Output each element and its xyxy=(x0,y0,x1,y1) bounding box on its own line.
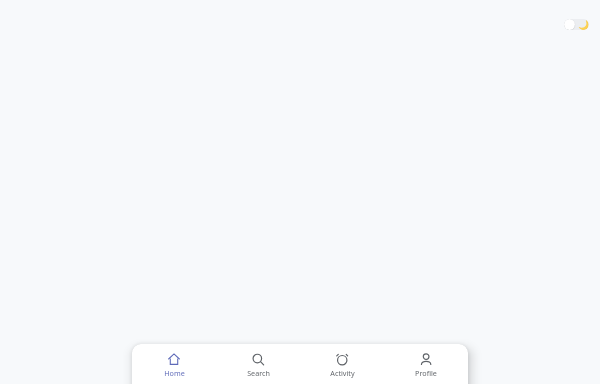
staticText: Home xyxy=(164,368,185,378)
button[interactable]: Home xyxy=(132,344,216,384)
staticText: 🌙 xyxy=(578,20,589,30)
button[interactable]: Activity xyxy=(300,344,384,384)
button[interactable]: Search xyxy=(216,344,300,384)
button[interactable]: Profile xyxy=(384,344,468,384)
staticText: Activity xyxy=(330,368,355,378)
staticText: Profile xyxy=(415,368,437,378)
button[interactable]: Toggle dark mode xyxy=(564,19,589,30)
staticText: Search xyxy=(247,368,270,378)
